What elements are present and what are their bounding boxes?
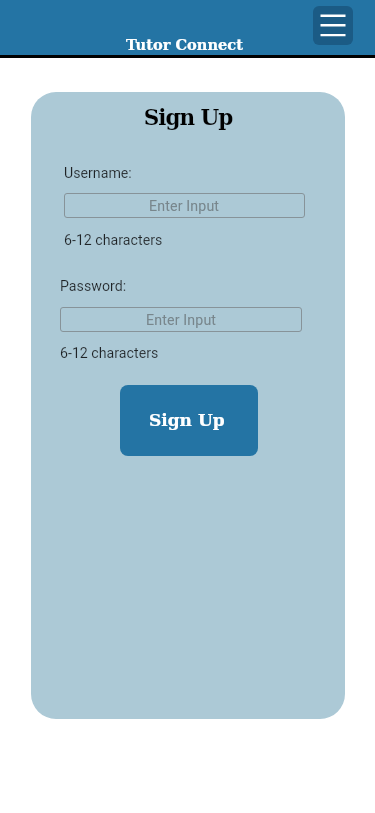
staticText: 6-12 characters [64, 232, 163, 249]
staticText: Sign Up [31, 105, 345, 130]
staticText: Enter Input [149, 198, 220, 215]
staticText: Sign Up [149, 410, 225, 430]
button[interactable]: Enter Input [60, 307, 302, 332]
staticText: Password: [60, 278, 127, 295]
button[interactable]: Open navigation menu [313, 6, 353, 45]
staticText: Enter Input [146, 312, 217, 329]
staticText: Tutor Connect [0, 36, 372, 53]
button[interactable]: Enter Input [64, 193, 305, 218]
staticText: 6-12 characters [60, 345, 159, 362]
button[interactable]: Sign Up [120, 385, 258, 456]
staticText: Username: [64, 165, 132, 182]
